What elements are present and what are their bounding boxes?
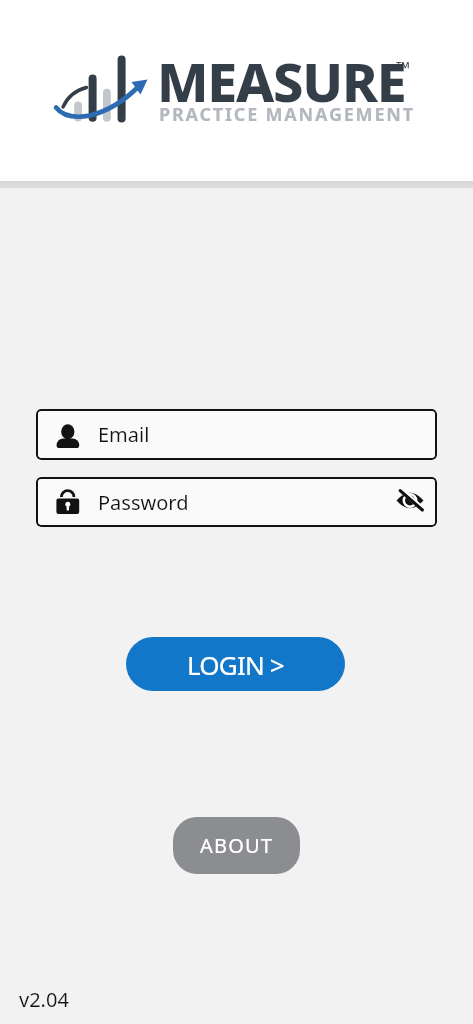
button[interactable]: Password [36,477,437,527]
button[interactable]: ABOUT [173,817,300,874]
staticText: MEASURE [157,44,406,118]
button[interactable]: LOGIN > [126,637,345,691]
staticText: LOGIN > [187,647,284,682]
button[interactable]: Email [36,409,437,460]
staticText: Email [98,421,150,448]
staticText: ABOUT [200,832,274,859]
staticText: PRACTICE MANAGEMENT [159,102,415,127]
staticText: ™ [396,56,410,81]
staticText: v2.04 [19,986,69,1013]
button[interactable] [396,488,424,516]
staticText: Password [98,489,189,516]
